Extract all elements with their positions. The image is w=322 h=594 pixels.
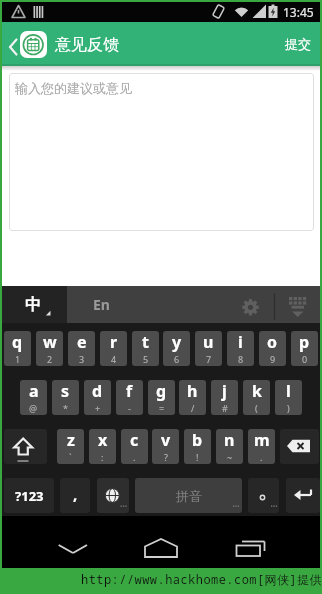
- button[interactable]: h: [179, 380, 206, 415]
- staticText: ): [287, 402, 290, 414]
- staticText: `: [69, 451, 72, 463]
- button[interactable]: [4, 30, 20, 58]
- button[interactable]: m: [248, 429, 275, 464]
- button[interactable]: [135, 478, 242, 513]
- button[interactable]: [280, 429, 319, 464]
- button[interactable]: ?123: [4, 478, 54, 513]
- button[interactable]: z: [57, 429, 84, 464]
- staticText: p: [299, 331, 310, 353]
- button[interactable]: [282, 292, 314, 322]
- button[interactable]: r: [100, 331, 127, 366]
- button[interactable]: [133, 526, 188, 562]
- staticText: 8: [238, 353, 244, 365]
- button[interactable]: i: [227, 331, 254, 366]
- staticText: 9: [270, 353, 276, 365]
- button[interactable]: k: [243, 380, 270, 415]
- staticText: !: [196, 451, 199, 463]
- staticText: =: [159, 402, 165, 414]
- staticText: j: [222, 380, 227, 402]
- staticText: 5: [143, 353, 149, 365]
- button[interactable]: s: [52, 380, 79, 415]
- button[interactable]: a: [20, 380, 47, 415]
- button[interactable]: n: [216, 429, 243, 464]
- button[interactable]: [45, 526, 100, 562]
- button[interactable]: ,: [60, 478, 90, 513]
- staticText: ~: [227, 451, 233, 463]
- button[interactable]: d: [84, 380, 111, 415]
- staticText: o: [267, 331, 278, 353]
- button[interactable]: [222, 526, 277, 562]
- staticText: i: [238, 331, 243, 353]
- button[interactable]: u: [195, 331, 222, 366]
- staticText: 7: [206, 353, 212, 365]
- button[interactable]: [4, 429, 47, 464]
- staticText: 拼音: [176, 488, 202, 504]
- staticText: y: [172, 331, 182, 353]
- button[interactable]: w: [36, 331, 63, 366]
- button[interactable]: [286, 478, 320, 513]
- button[interactable]: b: [184, 429, 211, 464]
- staticText: a: [29, 380, 39, 402]
- button[interactable]: 中: [2, 286, 67, 323]
- staticText: 4: [111, 353, 117, 365]
- button[interactable]: j: [211, 380, 238, 415]
- staticText: 1: [15, 353, 21, 365]
- button[interactable]: [236, 292, 266, 322]
- button[interactable]: o: [259, 331, 286, 366]
- button[interactable]: x: [89, 429, 116, 464]
- staticText: v: [161, 429, 171, 451]
- button[interactable]: t: [132, 331, 159, 366]
- button[interactable]: 输入您的建议或意见: [9, 73, 314, 231]
- button[interactable]: 提交: [278, 26, 318, 62]
- staticText: e: [77, 331, 87, 353]
- button[interactable]: v: [152, 429, 179, 464]
- staticText: 中: [25, 295, 41, 315]
- staticText: l: [286, 380, 291, 402]
- staticText: 6: [174, 353, 180, 365]
- button[interactable]: c: [121, 429, 148, 464]
- staticText: http://www.hackhome.com[网侠]提供: [81, 571, 322, 587]
- button[interactable]: g: [148, 380, 175, 415]
- staticText: (: [255, 402, 258, 414]
- button[interactable]: l: [275, 380, 302, 415]
- staticText: 提交: [285, 36, 311, 52]
- staticText: q: [12, 331, 23, 353]
- button[interactable]: y: [163, 331, 190, 366]
- button[interactable]: [248, 478, 279, 513]
- staticText: 意见反馈: [55, 35, 119, 55]
- staticText: m: [254, 429, 270, 451]
- staticText: .: [133, 451, 136, 463]
- staticText: u: [203, 331, 214, 353]
- staticText: :: [101, 451, 104, 463]
- staticText: @: [29, 402, 38, 414]
- staticText: k: [252, 380, 262, 402]
- button[interactable]: f: [116, 380, 143, 415]
- staticText: -: [128, 402, 131, 414]
- staticText: En: [93, 295, 110, 314]
- staticText: r: [110, 331, 118, 353]
- staticText: *: [63, 402, 68, 414]
- staticText: 3: [79, 353, 85, 365]
- staticText: n: [224, 429, 235, 451]
- staticText: 输入您的建议或意见: [15, 80, 132, 96]
- staticText: f: [126, 380, 133, 402]
- staticText: z: [67, 429, 75, 451]
- staticText: /: [191, 402, 195, 414]
- staticText: c: [130, 429, 139, 451]
- button[interactable]: e: [68, 331, 95, 366]
- staticText: ?: [164, 451, 168, 463]
- staticText: b: [192, 429, 203, 451]
- staticText: w: [43, 331, 57, 353]
- staticText: +: [95, 402, 101, 414]
- button[interactable]: q: [4, 331, 31, 366]
- staticText: t: [142, 331, 149, 353]
- button[interactable]: p: [291, 331, 318, 366]
- staticText: .: [260, 451, 263, 463]
- button[interactable]: [97, 478, 129, 513]
- staticText: ?123: [15, 487, 44, 505]
- button[interactable]: En: [78, 286, 124, 323]
- staticText: g: [156, 380, 167, 402]
- staticText: ,: [73, 484, 78, 504]
- staticText: x: [98, 429, 108, 451]
- staticText: h: [187, 380, 198, 402]
